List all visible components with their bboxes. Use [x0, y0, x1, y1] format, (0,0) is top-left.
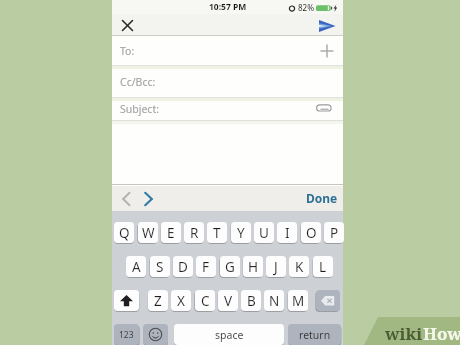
staticText: How	[423, 322, 460, 345]
button[interactable]	[316, 290, 340, 311]
staticText: D	[178, 258, 188, 276]
button[interactable]: space	[174, 324, 284, 345]
button[interactable]: D	[173, 256, 193, 277]
staticText: 10:57 PM	[209, 1, 247, 13]
staticText: H	[248, 258, 259, 276]
staticText: V	[224, 292, 233, 310]
staticText: wiki	[385, 322, 423, 345]
button[interactable]: X	[171, 290, 191, 311]
button[interactable]: O	[301, 222, 321, 243]
staticText: space	[215, 328, 244, 342]
staticText: C	[201, 292, 210, 310]
staticText: L	[319, 258, 327, 276]
staticText: T	[213, 224, 221, 242]
button[interactable]: E	[161, 222, 181, 243]
button[interactable]: N	[264, 290, 284, 311]
staticText: J	[274, 258, 278, 276]
button[interactable]	[114, 290, 139, 311]
button[interactable]: G	[220, 256, 240, 277]
staticText: 123	[119, 329, 134, 341]
button[interactable]: wiki	[385, 322, 460, 345]
button[interactable]: U	[254, 222, 274, 243]
button[interactable]: W	[138, 222, 158, 243]
button[interactable]: B	[241, 290, 261, 311]
staticText: E	[167, 224, 175, 242]
button[interactable]	[319, 43, 335, 59]
staticText: P	[330, 224, 339, 242]
button[interactable]: P	[324, 222, 344, 243]
button[interactable]: 123	[114, 324, 139, 345]
button[interactable]: Y	[231, 222, 251, 243]
button[interactable]: T	[207, 222, 227, 243]
staticText: I	[285, 224, 290, 242]
button[interactable]	[112, 98, 343, 120]
staticText: S	[156, 258, 164, 276]
staticText: K	[295, 258, 304, 276]
button[interactable]: J	[266, 256, 286, 277]
staticText: Subject:	[120, 102, 159, 116]
staticText: N	[269, 292, 280, 310]
button[interactable]: H	[243, 256, 263, 277]
staticText: F	[202, 258, 210, 276]
button[interactable]: K	[289, 256, 309, 277]
button[interactable]	[143, 324, 168, 345]
staticText: Cc/Bcc:	[120, 75, 156, 89]
button[interactable]	[112, 36, 343, 66]
staticText: G	[225, 258, 235, 276]
button[interactable]	[112, 66, 343, 96]
staticText: return	[299, 328, 331, 342]
button[interactable]: F	[196, 256, 216, 277]
staticText: A	[132, 258, 141, 276]
staticText: 82%	[298, 2, 314, 13]
staticText: W	[142, 224, 155, 242]
button[interactable]	[140, 189, 157, 208]
staticText: X	[177, 292, 185, 310]
button[interactable]: Q	[114, 222, 134, 243]
button[interactable]: C	[195, 290, 215, 311]
button[interactable]: R	[184, 222, 204, 243]
button[interactable]: I	[277, 222, 297, 243]
button[interactable]: Z	[148, 290, 168, 311]
button[interactable]: S	[150, 256, 170, 277]
button[interactable]: L	[313, 256, 333, 277]
button[interactable]: return	[288, 324, 341, 345]
staticText: To:	[120, 44, 135, 58]
button[interactable]	[117, 16, 137, 35]
staticText: Z	[154, 292, 162, 310]
staticText: O	[306, 224, 317, 242]
staticText: M	[292, 292, 305, 310]
button[interactable]: Done	[292, 186, 340, 210]
button[interactable]: V	[218, 290, 238, 311]
staticText: R	[190, 224, 199, 242]
button[interactable]	[118, 189, 135, 208]
button[interactable]	[316, 16, 338, 35]
staticText: Done	[306, 190, 338, 206]
staticText: B	[247, 292, 256, 310]
staticText: Q	[119, 224, 130, 242]
button[interactable]: A	[126, 256, 146, 277]
button[interactable]: M	[288, 290, 308, 311]
staticText: Y	[237, 224, 245, 242]
staticText: U	[259, 224, 269, 242]
